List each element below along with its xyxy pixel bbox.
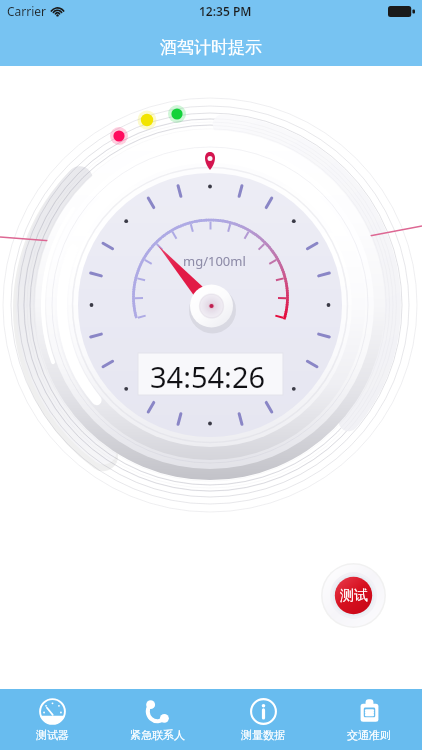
button[interactable]: 紧急联系人: [105, 689, 210, 750]
button[interactable]: 测试: [321, 563, 386, 628]
staticText: mg/100ml: [183, 252, 246, 270]
staticText: 紧急联系人: [130, 728, 185, 742]
button[interactable]: 测试器: [0, 689, 105, 750]
staticText: 测试: [340, 587, 368, 605]
staticText: 交通准则: [347, 728, 391, 742]
staticText: Carrier: [7, 3, 47, 19]
staticText: 12:35 PM: [199, 3, 252, 19]
staticText: 34:54:26: [150, 357, 266, 396]
staticText: 酒驾计时提示: [160, 37, 262, 58]
staticText: 测量数据: [241, 728, 285, 742]
staticText: 测试器: [36, 728, 69, 742]
button[interactable]: 交通准则: [316, 689, 422, 750]
button[interactable]: 测量数据: [210, 689, 316, 750]
